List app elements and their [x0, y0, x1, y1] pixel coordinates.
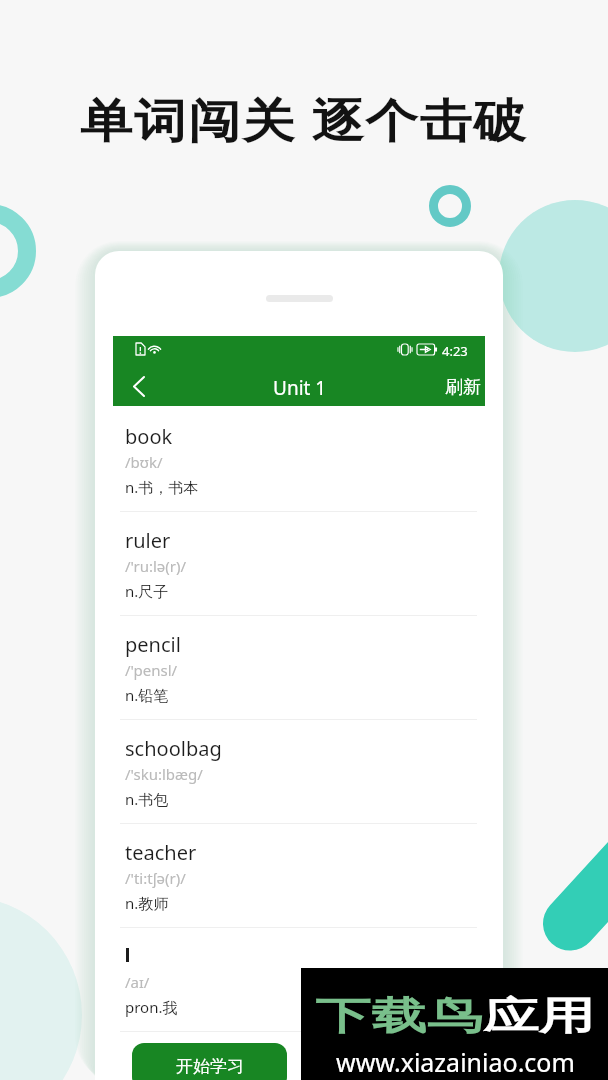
button[interactable]: teacher	[113, 824, 485, 928]
staticText: ruler	[125, 527, 171, 554]
staticText: pron.我	[125, 997, 178, 1017]
staticText: n.尺子	[125, 581, 169, 601]
staticText: schoolbag	[125, 735, 222, 762]
staticText: 开始学习	[176, 1056, 244, 1077]
button[interactable]: 开始学习	[132, 1043, 287, 1080]
button[interactable]: 刷新	[445, 375, 481, 398]
staticText: /bʊk/	[125, 452, 163, 472]
staticText: book	[125, 423, 173, 450]
staticText: /'sku:lbæg/	[125, 764, 203, 784]
staticText: /'ti:tʃə(r)/	[125, 868, 186, 888]
button[interactable]: ruler	[113, 512, 485, 616]
staticText: www.xiazainiao.com	[336, 1045, 575, 1079]
button[interactable]: pencil	[113, 616, 485, 720]
button[interactable]: book	[113, 408, 485, 512]
button[interactable]: schoolbag	[113, 720, 485, 824]
staticText: /aɪ/	[125, 972, 150, 992]
staticText: 刷新	[445, 376, 481, 399]
staticText: 应用	[483, 993, 595, 1040]
staticText: pencil	[125, 631, 181, 658]
staticText: /'pensl/	[125, 660, 178, 680]
staticText: n.书，书本	[125, 477, 199, 497]
staticText: Unit 1	[273, 375, 327, 401]
button[interactable]: Back	[117, 367, 159, 406]
staticText: /'ru:lə(r)/	[125, 556, 187, 576]
button[interactable]: /aɪ/	[113, 928, 485, 1032]
staticText: 下载鸟	[315, 993, 483, 1040]
staticText: n.书包	[125, 789, 169, 809]
staticText: 4:23	[442, 342, 468, 360]
staticText: 单词闯关 逐个击破	[80, 88, 528, 151]
staticText: teacher	[125, 839, 197, 866]
staticText: n.铅笔	[125, 685, 169, 705]
staticText: n.教师	[125, 893, 169, 913]
